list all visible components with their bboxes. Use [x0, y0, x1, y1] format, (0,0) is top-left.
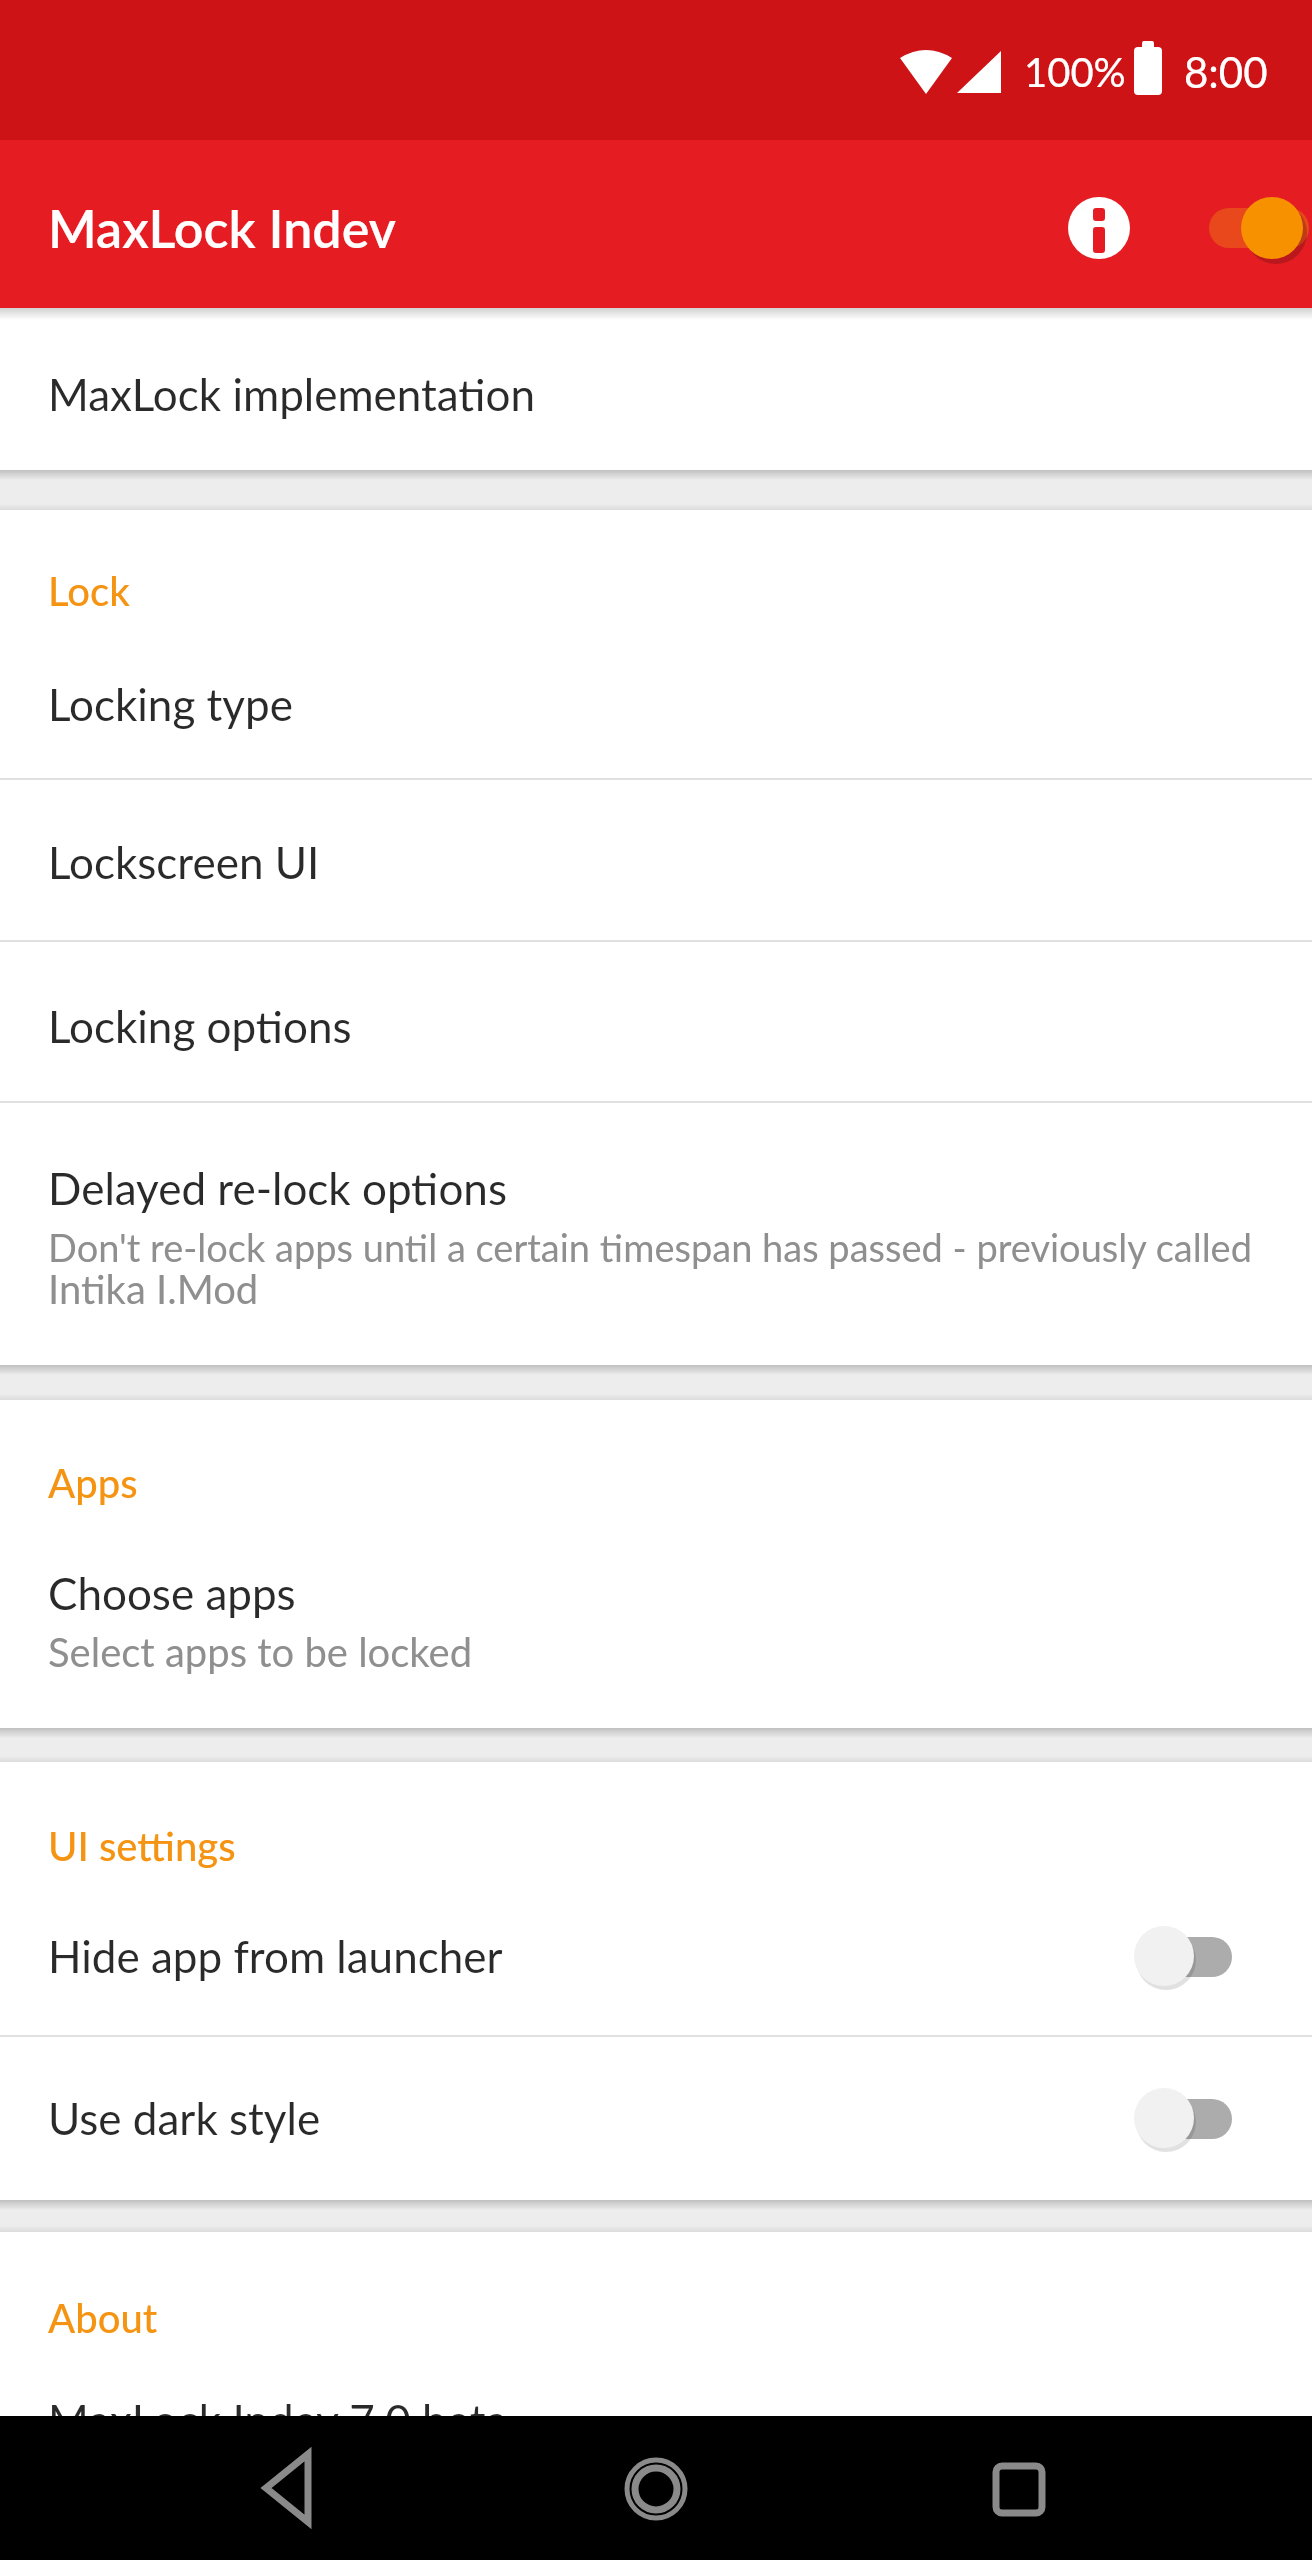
button[interactable] — [949, 2418, 1089, 2558]
staticText: Don't re-lock apps until a certain times… — [48, 1224, 1252, 1270]
staticText: MaxLock implementation — [48, 368, 536, 421]
button[interactable]: Locking type — [0, 630, 1312, 778]
staticText: MaxLock Indev 7.0 beta — [48, 2394, 508, 2447]
staticText: MaxLock Indev — [48, 197, 396, 259]
button[interactable]: Hide app from launcher — [0, 1892, 1312, 2035]
button[interactable] — [1205, 188, 1312, 268]
button[interactable] — [586, 2418, 726, 2558]
button[interactable]: MaxLock Indev 7.0 beta — [0, 2382, 1312, 2560]
button[interactable]: Delayed re-lock options — [0, 1103, 1312, 1365]
button[interactable]: MaxLock implementation — [0, 308, 1312, 470]
staticText: Locking options — [48, 1000, 352, 1053]
staticText: Use dark style — [48, 2092, 321, 2145]
staticText: Choose apps — [48, 1567, 296, 1620]
staticText: Locking type — [48, 678, 293, 731]
staticText: UI settings — [48, 1822, 236, 1870]
staticText: Lockscreen UI — [48, 836, 320, 889]
staticText: Intika I.Mod — [48, 1265, 259, 1313]
button[interactable] — [1068, 197, 1130, 259]
button[interactable]: Choose apps — [0, 1530, 1312, 1728]
staticText: Apps — [48, 1459, 138, 1507]
staticText: 100% — [1024, 48, 1126, 96]
staticText: Delayed re-lock options — [48, 1162, 507, 1215]
button[interactable]: Use dark style — [0, 2037, 1312, 2198]
button[interactable]: Lockscreen UI — [0, 780, 1312, 940]
staticText: About — [48, 2294, 158, 2342]
staticText: Lock — [48, 567, 130, 615]
staticText: Hide app from launcher — [48, 1930, 503, 1983]
staticText: Select apps to be locked — [48, 1628, 473, 1676]
staticText: 8:00 — [1184, 47, 1268, 97]
button[interactable] — [221, 2418, 361, 2558]
button[interactable]: Locking options — [0, 942, 1312, 1101]
